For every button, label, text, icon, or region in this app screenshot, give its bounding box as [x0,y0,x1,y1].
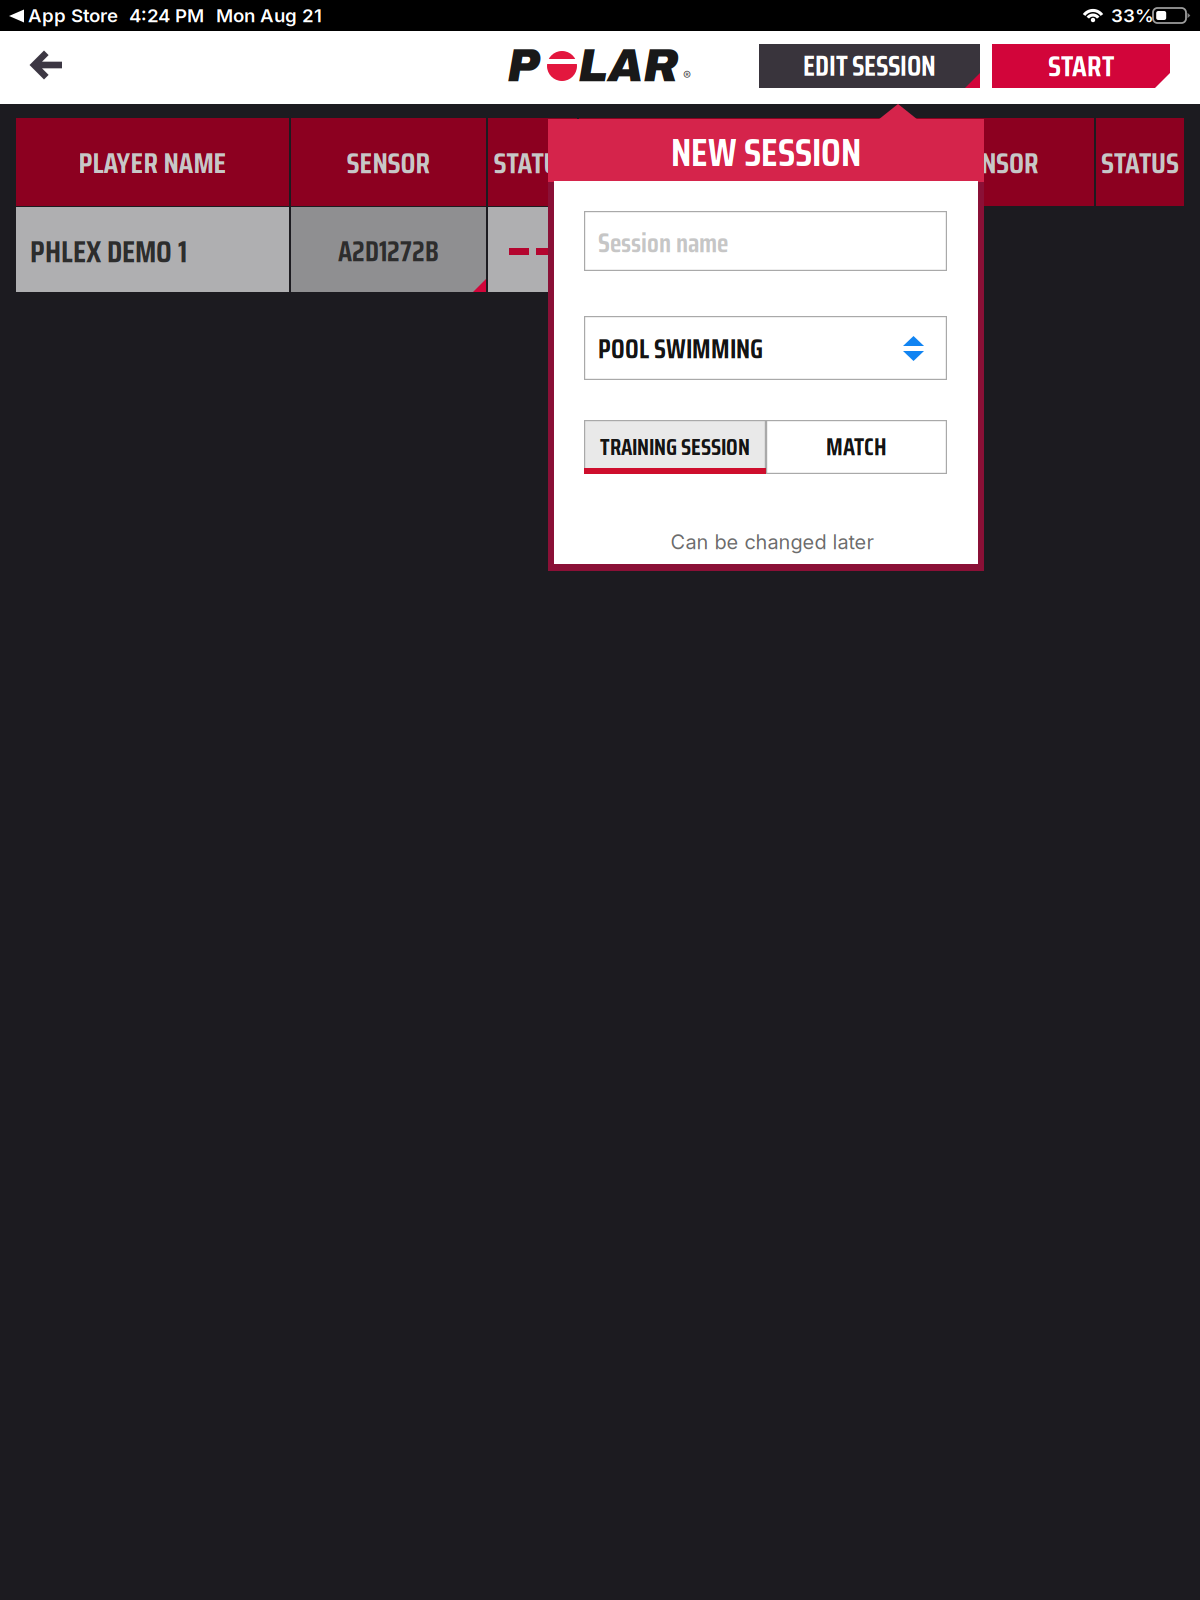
staticText: SENSOR [346,140,430,186]
staticText: PHLEX DEMO 1 [30,227,187,276]
staticText: TRAINING SESSION [600,429,750,465]
staticText: 4:24 PM [129,4,204,27]
staticText: Can be changed later [670,530,873,554]
staticText: ® [683,68,691,82]
staticText: STATUS [493,140,571,186]
staticText: STATUS [1101,140,1179,186]
staticText: START [1048,43,1114,89]
staticText: NEW SESSION [671,122,861,183]
staticText: POOL SWIMMING [598,328,763,370]
staticText: MATCH [826,428,887,466]
staticText: EDIT SESSION [803,44,936,88]
staticText: Mon Aug 21 [216,4,322,27]
button[interactable]: Back [15,37,77,93]
button[interactable]: START [992,44,1170,88]
button[interactable]: EDIT SESSION [759,44,980,88]
staticText: Session name [598,222,728,264]
button[interactable]: TRAINING SESSION [584,420,766,474]
staticText: 33% [1111,4,1154,27]
staticText: A2D1272B [338,229,439,274]
button[interactable]: Session name [584,211,947,271]
group: Polar [507,50,699,82]
staticText: P [507,41,540,91]
button[interactable]: MATCH [766,420,947,474]
staticText: LAR [578,41,678,91]
button[interactable]: PHLEX DEMO 1 [16,207,289,292]
staticText: App Store [28,4,118,27]
staticText: PLAYER NAME [78,140,226,186]
button[interactable]: POOL SWIMMING [584,316,947,380]
staticText: SENSOR [955,140,1039,186]
staticText: PLAYER NAME [664,140,812,186]
button[interactable]: A2D1272B [291,207,486,292]
